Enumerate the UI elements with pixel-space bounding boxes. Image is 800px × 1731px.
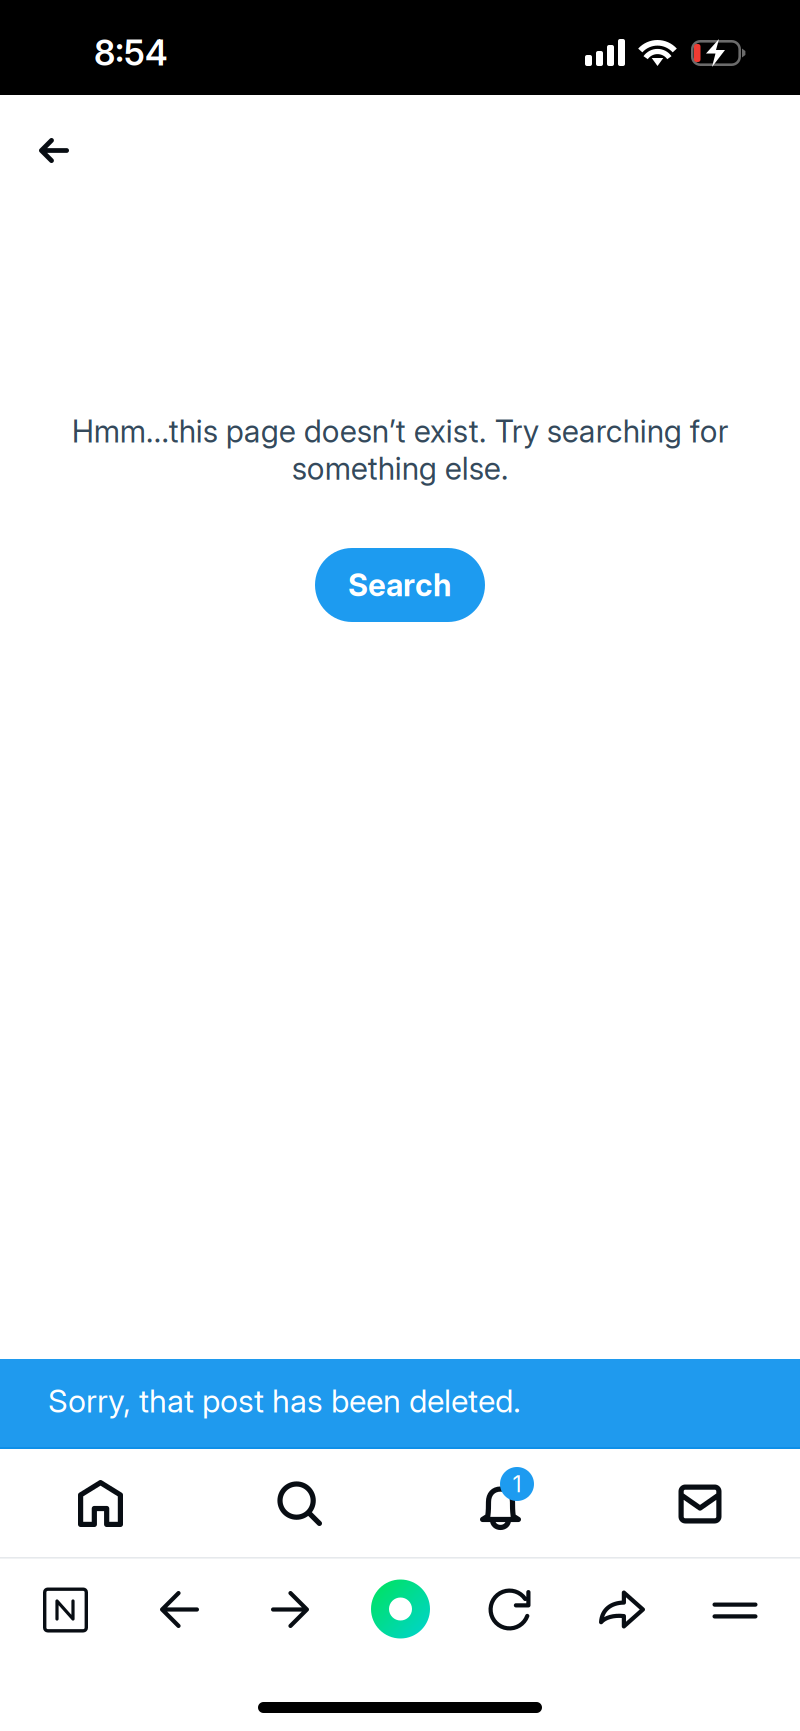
staticText: Sorry, that post has been deleted.: [48, 1382, 521, 1420]
button[interactable]: Share: [0, 1557, 800, 1660]
button[interactable]: Home: [0, 1449, 800, 1557]
staticText: Search: [348, 566, 452, 603]
staticText: 8:54: [94, 32, 168, 74]
button[interactable]: Messages: [0, 1449, 800, 1557]
button[interactable]: Back: [0, 1557, 800, 1660]
button[interactable]: Naver: [0, 1557, 800, 1660]
button[interactable]: Forward: [0, 1557, 800, 1660]
button[interactable]: Reload: [0, 1557, 800, 1660]
button[interactable]: Naver Home: [0, 1557, 800, 1660]
button[interactable]: Back: [0, 0, 800, 1731]
button[interactable]: Notifications: [0, 1449, 800, 1557]
staticText: 1: [512, 1470, 521, 1498]
staticText: Hmm…this page doesn’t exist. Try searchi…: [71, 413, 728, 487]
button[interactable]: Menu: [0, 1557, 800, 1660]
button[interactable]: Search: [0, 0, 800, 1731]
button[interactable]: Search: [0, 1449, 800, 1557]
